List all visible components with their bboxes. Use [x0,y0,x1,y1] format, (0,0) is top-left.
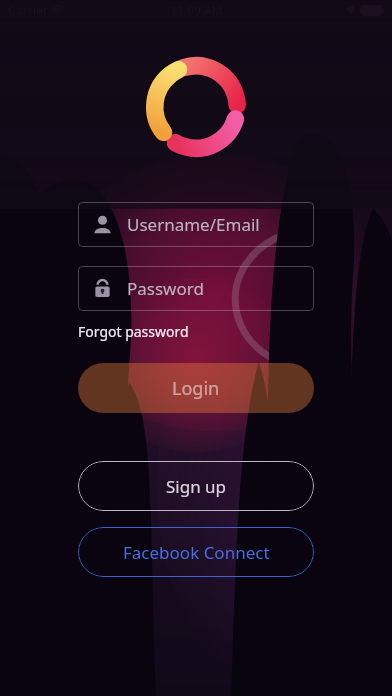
staticText: Password [127,277,204,300]
staticText: Login [172,376,220,401]
button[interactable]: Facebook Connect [78,527,314,577]
staticText: Username/Email [127,213,260,236]
button[interactable]: Username/Email [78,202,314,247]
button[interactable]: Sign up [78,461,314,511]
staticText: Sign up [166,475,227,498]
staticText: Facebook Connect [123,541,270,564]
button[interactable]: Login [78,363,314,413]
button[interactable]: Forgot password [78,320,189,343]
button[interactable]: Password [78,266,314,311]
staticText: Forgot password [78,322,189,341]
